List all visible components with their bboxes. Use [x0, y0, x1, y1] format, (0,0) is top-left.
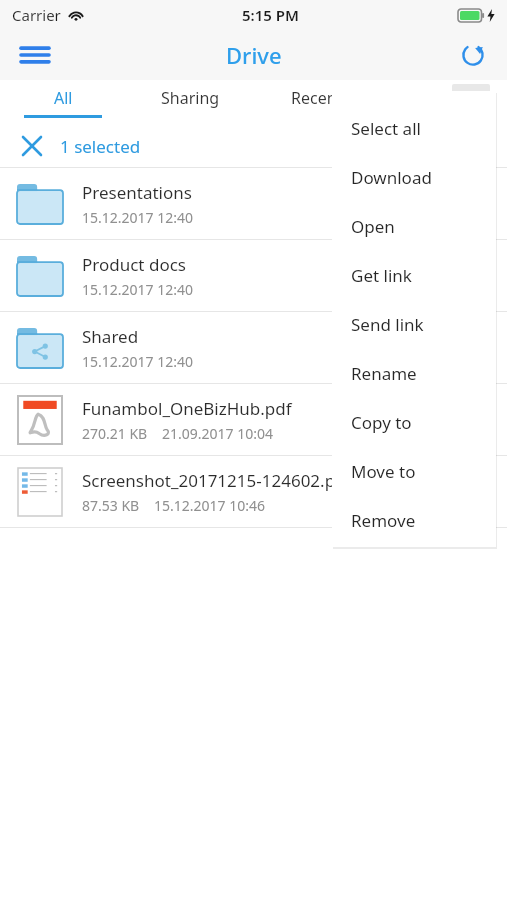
staticText: 15.12.2017 10:46	[154, 496, 265, 515]
staticText: Drive	[226, 40, 282, 70]
staticText: 15.12.2017 12:40	[82, 352, 193, 371]
staticText: 270.21 KB	[82, 424, 148, 443]
staticText: Send link	[351, 313, 424, 336]
staticText: All	[54, 87, 73, 109]
staticText: Rename	[351, 362, 417, 385]
button[interactable]: Recent	[253, 80, 380, 125]
button[interactable]: Product docs	[0, 240, 507, 311]
staticText: 15.12.2017 12:40	[82, 208, 193, 227]
button[interactable]: Download	[332, 153, 496, 202]
button[interactable]: Funambol_OneBizHub.pdf	[0, 384, 507, 455]
staticText: 21.09.2017 10:04	[162, 424, 273, 443]
staticText: Move to	[351, 460, 416, 483]
button[interactable]: Remove	[332, 496, 496, 545]
staticText: Recent	[291, 87, 343, 109]
staticText: Carrier	[12, 5, 61, 25]
button[interactable]: Menu	[10, 30, 60, 80]
staticText: Product docs	[82, 253, 186, 276]
staticText: Copy to	[351, 411, 412, 434]
button[interactable]: Close selection	[14, 128, 50, 164]
staticText: Select all	[351, 117, 421, 140]
button[interactable]: Move to	[332, 447, 496, 496]
staticText: Sharing	[161, 87, 220, 109]
staticText: Screenshot_20171215-124602.png	[82, 469, 357, 492]
button[interactable]: Refresh	[449, 31, 497, 79]
button[interactable]: Open	[332, 202, 496, 251]
staticText: 87.53 KB	[82, 496, 140, 515]
staticText: Funambol_OneBizHub.pdf	[82, 397, 292, 420]
button[interactable]: Rename	[332, 349, 496, 398]
button[interactable]: Get link	[332, 251, 496, 300]
staticText: Open	[351, 215, 395, 238]
button[interactable]: Copy to	[332, 398, 496, 447]
staticText: Download	[351, 166, 432, 189]
button[interactable]: Send link	[332, 300, 496, 349]
staticText: 15.12.2017 12:40	[82, 280, 193, 299]
staticText: Remove	[351, 509, 416, 532]
staticText: Get link	[351, 264, 412, 287]
button[interactable]: Screenshot_20171215-124602.png	[0, 456, 507, 527]
staticText: 5:15 PM	[242, 5, 299, 25]
staticText: 1 selected	[60, 135, 141, 158]
button[interactable]: Select all	[332, 104, 496, 153]
staticText: Shared	[82, 325, 139, 348]
button[interactable]: All	[0, 80, 126, 125]
button[interactable]: Presentations	[0, 168, 507, 239]
button[interactable]: Shared	[0, 312, 507, 383]
button[interactable]: Sharing	[126, 80, 253, 125]
staticText: Presentations	[82, 181, 192, 204]
